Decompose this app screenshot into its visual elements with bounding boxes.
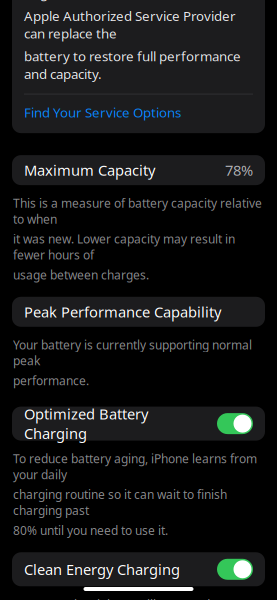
button[interactable]: Peak Performance Capability [12, 297, 265, 327]
staticText: 78% [225, 160, 253, 180]
staticText: Clean Energy Charging [24, 559, 180, 579]
staticText: To reduce battery aging, iPhone learns f… [13, 451, 257, 482]
staticText: Your battery is currently supporting nor… [13, 337, 252, 369]
button[interactable]: Find Your Service Options [24, 94, 253, 130]
staticText: Optimized Battery Charging [24, 404, 148, 443]
staticText: Peak Performance Capability [24, 302, 221, 322]
staticText: battery to restore full performance and … [24, 47, 241, 83]
staticText: Find Your Service Options [24, 103, 181, 121]
button[interactable]: Maximum Capacity [12, 155, 265, 185]
staticText: it was new. Lower capacity may result in… [13, 231, 235, 263]
staticText: 80% until you need to use it. [13, 522, 168, 538]
button[interactable]: Clean Energy Charging [12, 552, 265, 586]
button[interactable]: Optimized Battery Charging [12, 407, 265, 441]
staticText: Maximum Capacity [24, 160, 155, 180]
staticText: performance. [13, 373, 89, 389]
staticText: This is a measure of battery capacity re… [13, 195, 262, 227]
staticText: Your battery's health is significantly d… [24, 0, 240, 2]
staticText: usage between charges. [13, 267, 149, 283]
staticText: In your region, iPhone will try to reduc… [13, 596, 258, 600]
staticText: Apple Authorized Service Provider can re… [24, 7, 236, 42]
staticText: charging routine so it can wait to finis… [13, 486, 227, 518]
